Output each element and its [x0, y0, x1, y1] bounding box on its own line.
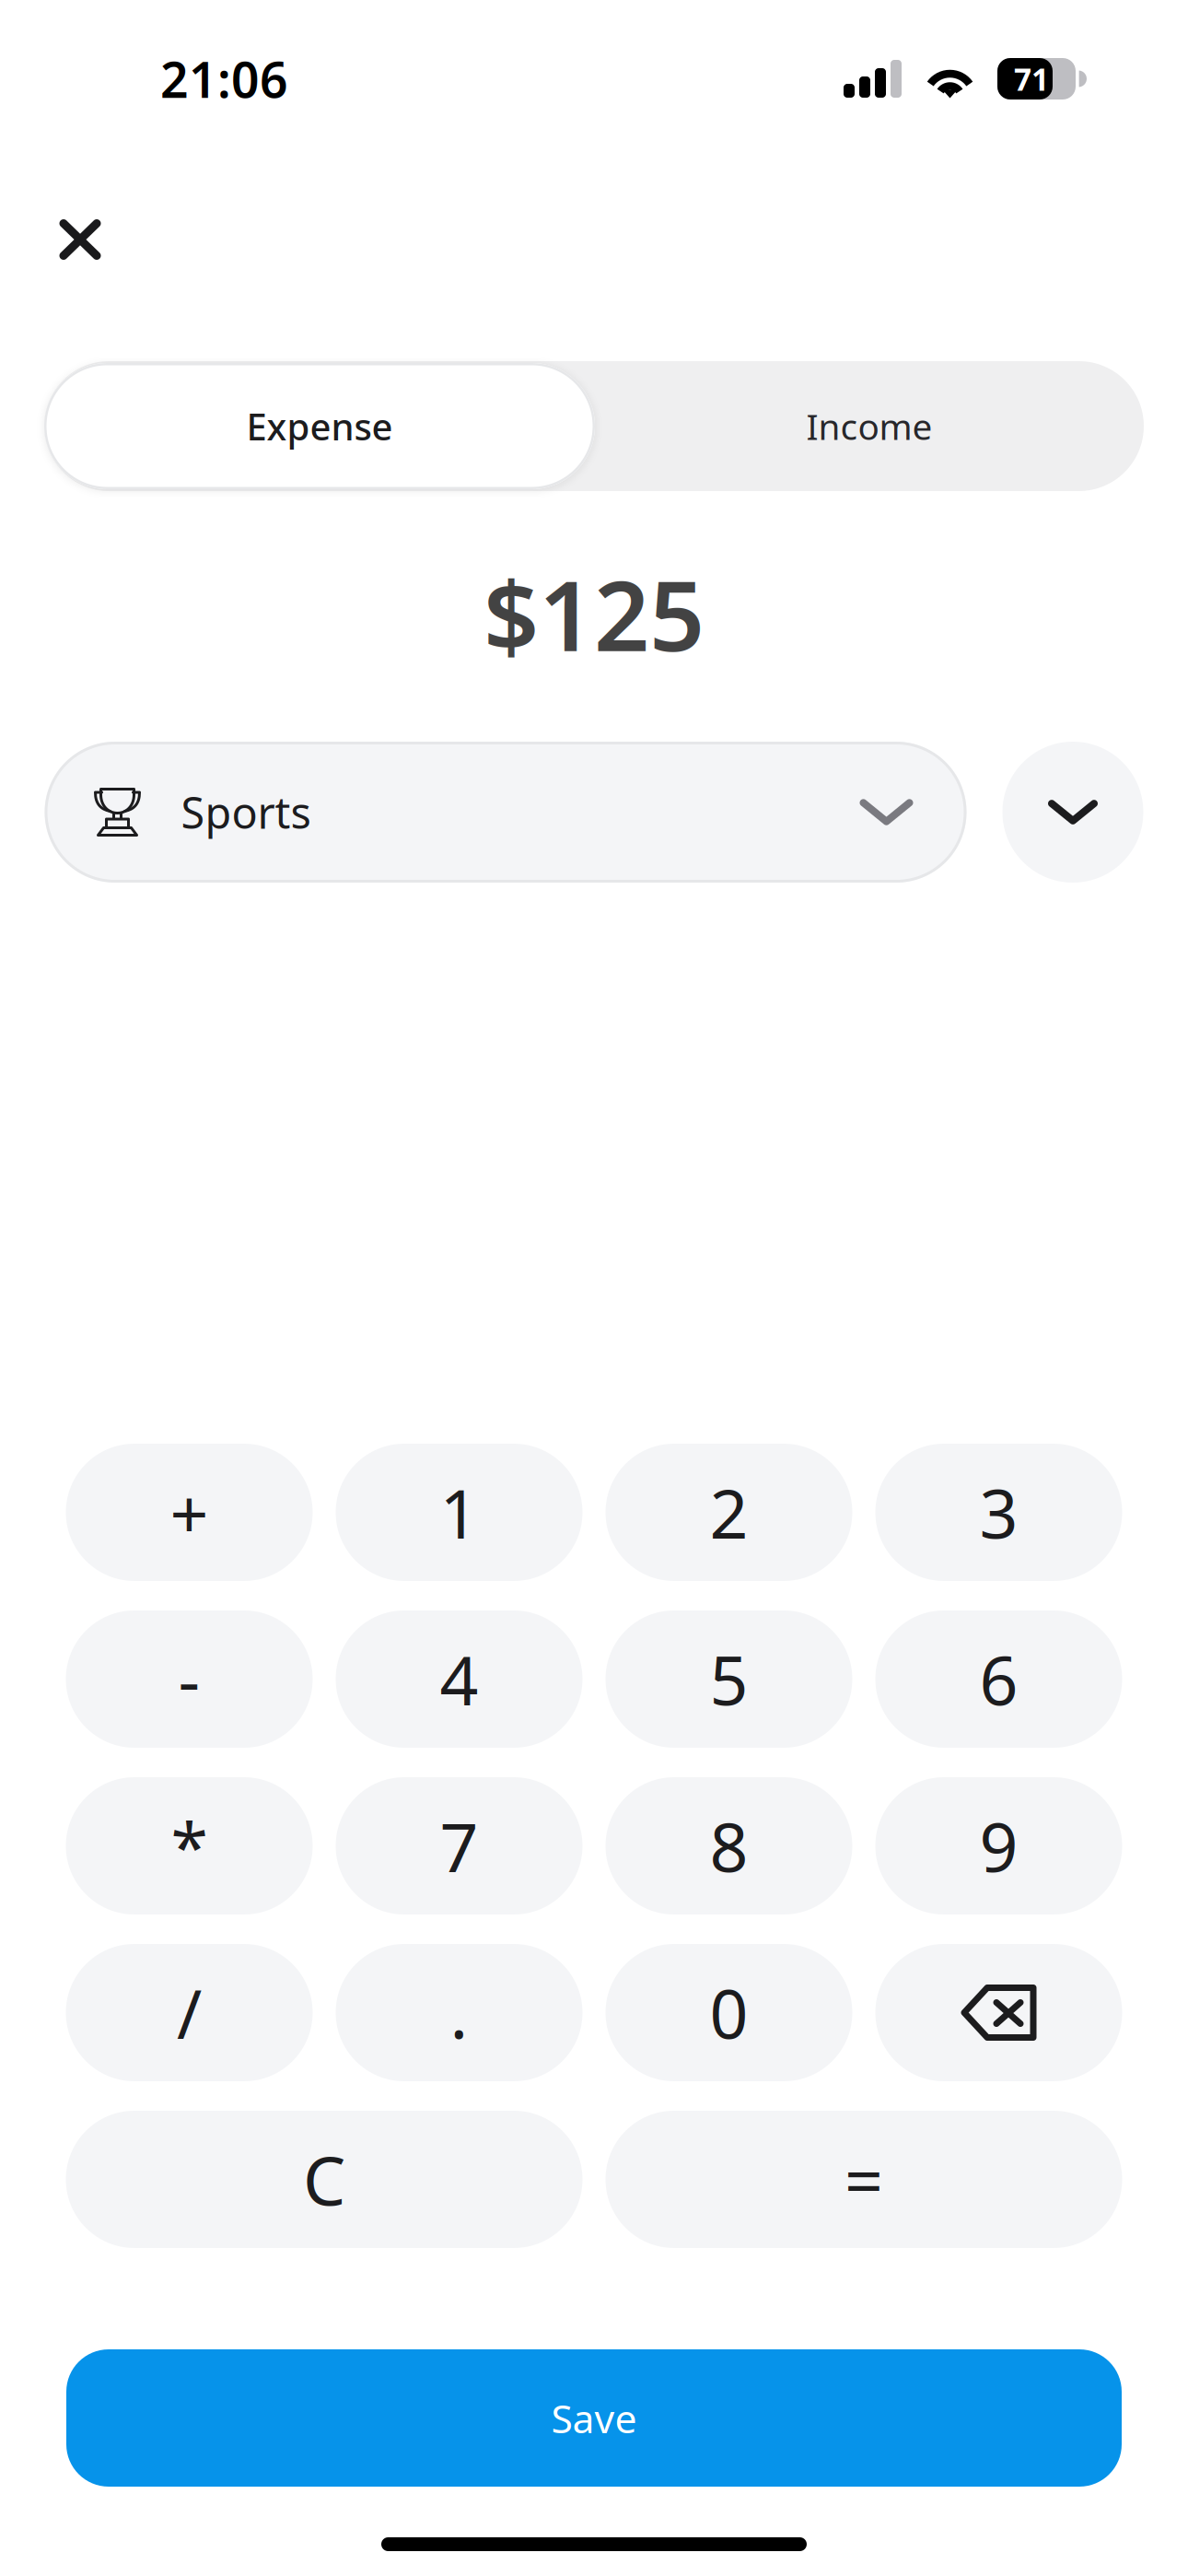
button[interactable]: 9 [875, 1777, 1122, 1914]
staticText: 6 [979, 1634, 1018, 1724]
button[interactable]: 6 [875, 1610, 1122, 1748]
button[interactable]: 4 [336, 1610, 582, 1748]
button[interactable]: 7 [336, 1777, 582, 1914]
staticText: 4 [440, 1634, 478, 1724]
button[interactable]: / [66, 1944, 313, 2081]
button[interactable]: . [336, 1944, 582, 2081]
button[interactable]: 8 [606, 1777, 852, 1914]
button[interactable]: 5 [606, 1610, 852, 1748]
button[interactable]: - [66, 1610, 313, 1748]
staticText: Expense [246, 402, 393, 451]
staticText: - [178, 1634, 200, 1724]
button[interactable]: C [66, 2111, 582, 2248]
button[interactable]: Save [66, 2349, 1122, 2487]
button[interactable]: Expand [1002, 742, 1143, 883]
staticText: 0 [710, 1968, 748, 2057]
staticText: 2 [710, 1467, 748, 1557]
button[interactable]: Expense [44, 363, 595, 489]
staticText: 8 [710, 1801, 748, 1891]
staticText: 3 [979, 1467, 1018, 1557]
staticText: 1 [440, 1467, 478, 1557]
button[interactable]: = [606, 2111, 1122, 2248]
button[interactable]: Delete [875, 1944, 1122, 2081]
button[interactable]: * [66, 1777, 313, 1914]
staticText: Save [551, 2392, 637, 2444]
staticText: $125 [483, 549, 705, 678]
staticText: / [177, 1968, 202, 2057]
staticText: Sports [181, 784, 311, 841]
button[interactable]: 1 [336, 1444, 582, 1581]
button[interactable]: Close [39, 198, 122, 281]
staticText: 5 [710, 1634, 748, 1724]
staticText: . [450, 1968, 468, 2057]
staticText: C [303, 2135, 345, 2224]
button[interactable]: 3 [875, 1444, 1122, 1581]
staticText: + [170, 1467, 209, 1557]
staticText: = [844, 2135, 883, 2224]
button[interactable]: 2 [606, 1444, 852, 1581]
staticText: 7 [440, 1801, 478, 1891]
staticText: * [171, 1801, 208, 1891]
staticText: Income [806, 402, 932, 450]
button[interactable]: Income [595, 361, 1144, 491]
button[interactable]: + [66, 1444, 313, 1581]
staticText: 21:06 [160, 46, 288, 111]
staticText: 9 [979, 1801, 1018, 1891]
button[interactable]: 0 [606, 1944, 852, 2081]
button[interactable]: Sports [45, 742, 967, 883]
staticText: 71 [1014, 58, 1049, 99]
